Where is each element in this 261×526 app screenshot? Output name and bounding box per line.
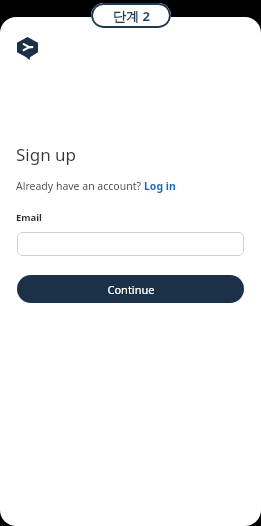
button[interactable] [17,232,244,256]
staticText: Already have an account? [16,179,144,193]
staticText: Log in [144,179,176,193]
staticText: Sign up [16,143,77,166]
button[interactable]: Log in [144,179,176,193]
staticText: 단계 2 [113,7,150,25]
staticText: Continue [107,282,155,297]
staticText: Email [16,211,42,224]
button[interactable]: Continue [17,275,244,303]
other: Logo [17,37,38,60]
